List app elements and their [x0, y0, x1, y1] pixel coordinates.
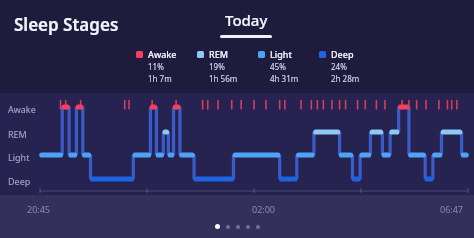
- staticText: 19%: [209, 61, 225, 72]
- staticText: Light: [270, 48, 292, 60]
- staticText: 2h 28m: [331, 73, 360, 84]
- button[interactable]: Deep: [319, 48, 360, 82]
- staticText: 24%: [331, 61, 347, 72]
- staticText: 06:47: [440, 203, 464, 215]
- staticText: 45%: [270, 61, 286, 72]
- staticText: 02:00: [252, 203, 276, 215]
- staticText: Today: [225, 10, 268, 30]
- button[interactable]: [256, 225, 260, 229]
- button[interactable]: [236, 225, 240, 229]
- button[interactable]: [246, 225, 250, 229]
- staticText: Sleep Stages: [14, 13, 119, 36]
- staticText: 4h 31m: [270, 73, 299, 84]
- staticText: Awake: [8, 103, 36, 115]
- button[interactable]: Light: [258, 48, 299, 82]
- staticText: 1h 7m: [148, 73, 172, 84]
- staticText: REM: [209, 48, 228, 60]
- staticText: Deep: [331, 48, 354, 60]
- staticText: REM: [8, 128, 27, 140]
- staticText: 20:45: [27, 203, 51, 215]
- staticText: Awake: [148, 48, 177, 60]
- staticText: 11%: [148, 61, 164, 72]
- button[interactable]: Today: [210, 8, 282, 40]
- button[interactable]: [215, 224, 220, 229]
- staticText: Light: [8, 151, 30, 163]
- button[interactable]: [226, 225, 230, 229]
- staticText: Deep: [8, 175, 31, 187]
- staticText: 1h 56m: [209, 73, 238, 84]
- button[interactable]: REM: [197, 48, 238, 82]
- button[interactable]: Awake: [136, 48, 177, 82]
